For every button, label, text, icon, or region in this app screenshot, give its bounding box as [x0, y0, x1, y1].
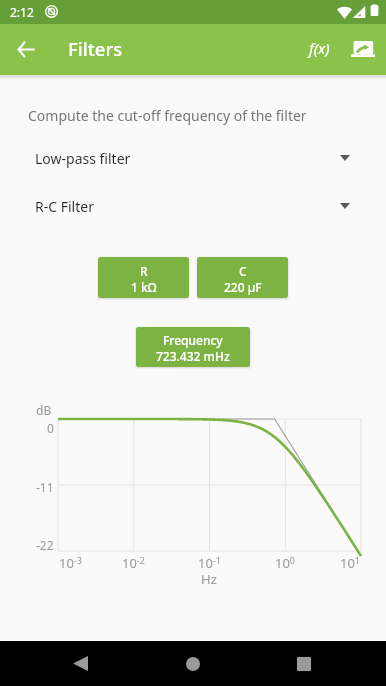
staticText: Low-pass filter — [35, 149, 131, 168]
button[interactable]: Home — [170, 641, 215, 686]
staticText: 10-2 — [122, 554, 145, 572]
staticText: 723.432 mHz — [156, 348, 230, 364]
button[interactable]: Recents — [281, 641, 326, 686]
staticText: C — [239, 263, 247, 279]
staticText: 0 — [47, 420, 54, 436]
staticText: 101 — [340, 554, 361, 572]
staticText: -11 — [36, 479, 54, 495]
button[interactable]: Back — [58, 641, 103, 686]
staticText: 220 µF — [224, 279, 262, 295]
staticText: -22 — [36, 537, 54, 553]
staticText: f(x) — [309, 38, 330, 58]
staticText: 10-1 — [198, 554, 221, 572]
staticText: Compute the cut-off frequency of the fil… — [28, 106, 307, 125]
staticText: 1 kΩ — [131, 279, 157, 295]
button[interactable]: Back — [1, 25, 49, 73]
staticText: dB — [36, 402, 52, 418]
button[interactable]: Formula — [295, 24, 343, 72]
button[interactable]: R — [98, 257, 189, 298]
staticText: Filters — [68, 36, 123, 61]
staticText: Frequency — [163, 332, 223, 348]
staticText: R — [140, 263, 148, 279]
button[interactable]: Low-pass filter — [0, 141, 386, 173]
staticText: Hz — [201, 570, 217, 588]
button[interactable]: C — [197, 257, 288, 298]
staticText: 100 — [275, 554, 296, 572]
staticText: 10-3 — [59, 554, 82, 572]
staticText: 2:12 — [10, 4, 34, 20]
button[interactable]: R-C Filter — [0, 189, 386, 221]
button[interactable]: Frequency — [136, 327, 250, 367]
staticText: R-C Filter — [35, 197, 94, 216]
button[interactable]: Share — [339, 25, 386, 73]
